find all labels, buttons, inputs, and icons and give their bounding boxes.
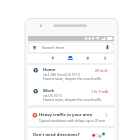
button[interactable]: Explore (44, 54, 61, 63)
staticText: Fastest route, despite the usual traffic (43, 76, 102, 80)
staticText: Search here (42, 45, 65, 50)
button[interactable]: Home (28, 65, 114, 85)
button[interactable]: Go (62, 54, 79, 63)
staticText: Home (43, 67, 56, 73)
button[interactable]: Don't need directions? (33, 132, 80, 138)
button[interactable]: Contribute (97, 54, 114, 63)
staticText: 20 min (95, 68, 107, 73)
staticText: via US-101 S (43, 93, 62, 97)
staticText: 1 hr 5 min (91, 89, 109, 94)
staticText: Work (43, 88, 55, 94)
staticText: Heavy traffic in your area (39, 112, 92, 118)
button[interactable]: Heavy traffic in your area (28, 108, 114, 126)
staticText: via I-280 S and US-101 S (43, 72, 80, 76)
button[interactable]: Saved (79, 54, 96, 63)
staticText: Typical conditions with delays up to 20 … (39, 118, 106, 122)
staticText: Fastest route, despite the usual traffic (43, 97, 102, 101)
button[interactable]: Search here (29, 43, 113, 52)
button[interactable]: Work (28, 86, 114, 106)
